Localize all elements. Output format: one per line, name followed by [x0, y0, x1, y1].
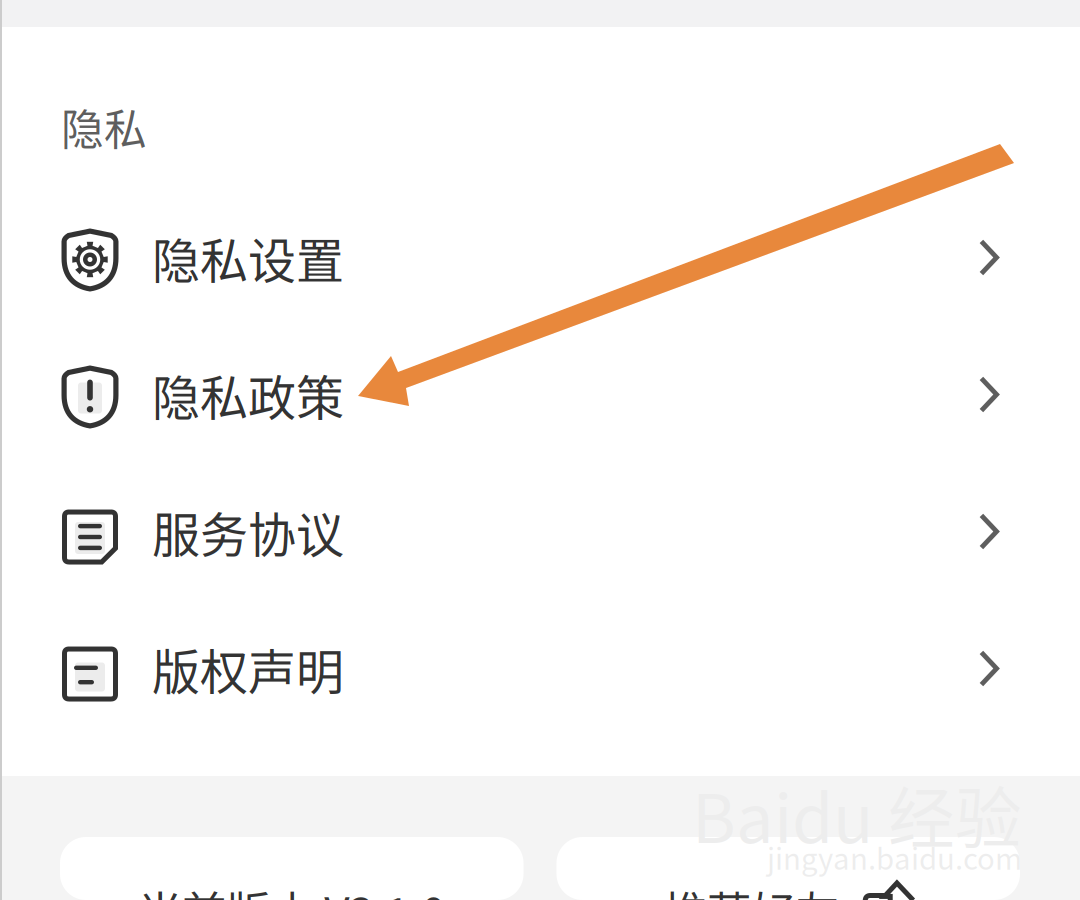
- staticText: 当前版本 V3.1.0: [138, 878, 445, 900]
- staticText: Baidu 经验: [692, 766, 1022, 862]
- staticText: 服务协议: [152, 497, 344, 566]
- button[interactable]: 隐私设置: [0, 189, 1080, 326]
- button[interactable]: 当前版本 V3.1.0: [60, 883, 523, 900]
- button[interactable]: 隐私政策: [0, 326, 1080, 463]
- staticText: 隐私政策: [152, 360, 344, 429]
- button[interactable]: 服务协议: [0, 463, 1080, 600]
- staticText: 隐私设置: [152, 223, 344, 292]
- staticText: 隐私: [61, 96, 147, 158]
- button[interactable]: 推荐好友: [556, 883, 1020, 900]
- staticText: 版权声明: [152, 634, 344, 703]
- staticText: 推荐好友: [663, 878, 839, 900]
- staticText: jingyan.baidu.com: [767, 836, 1022, 878]
- button[interactable]: 版权声明: [0, 600, 1080, 737]
